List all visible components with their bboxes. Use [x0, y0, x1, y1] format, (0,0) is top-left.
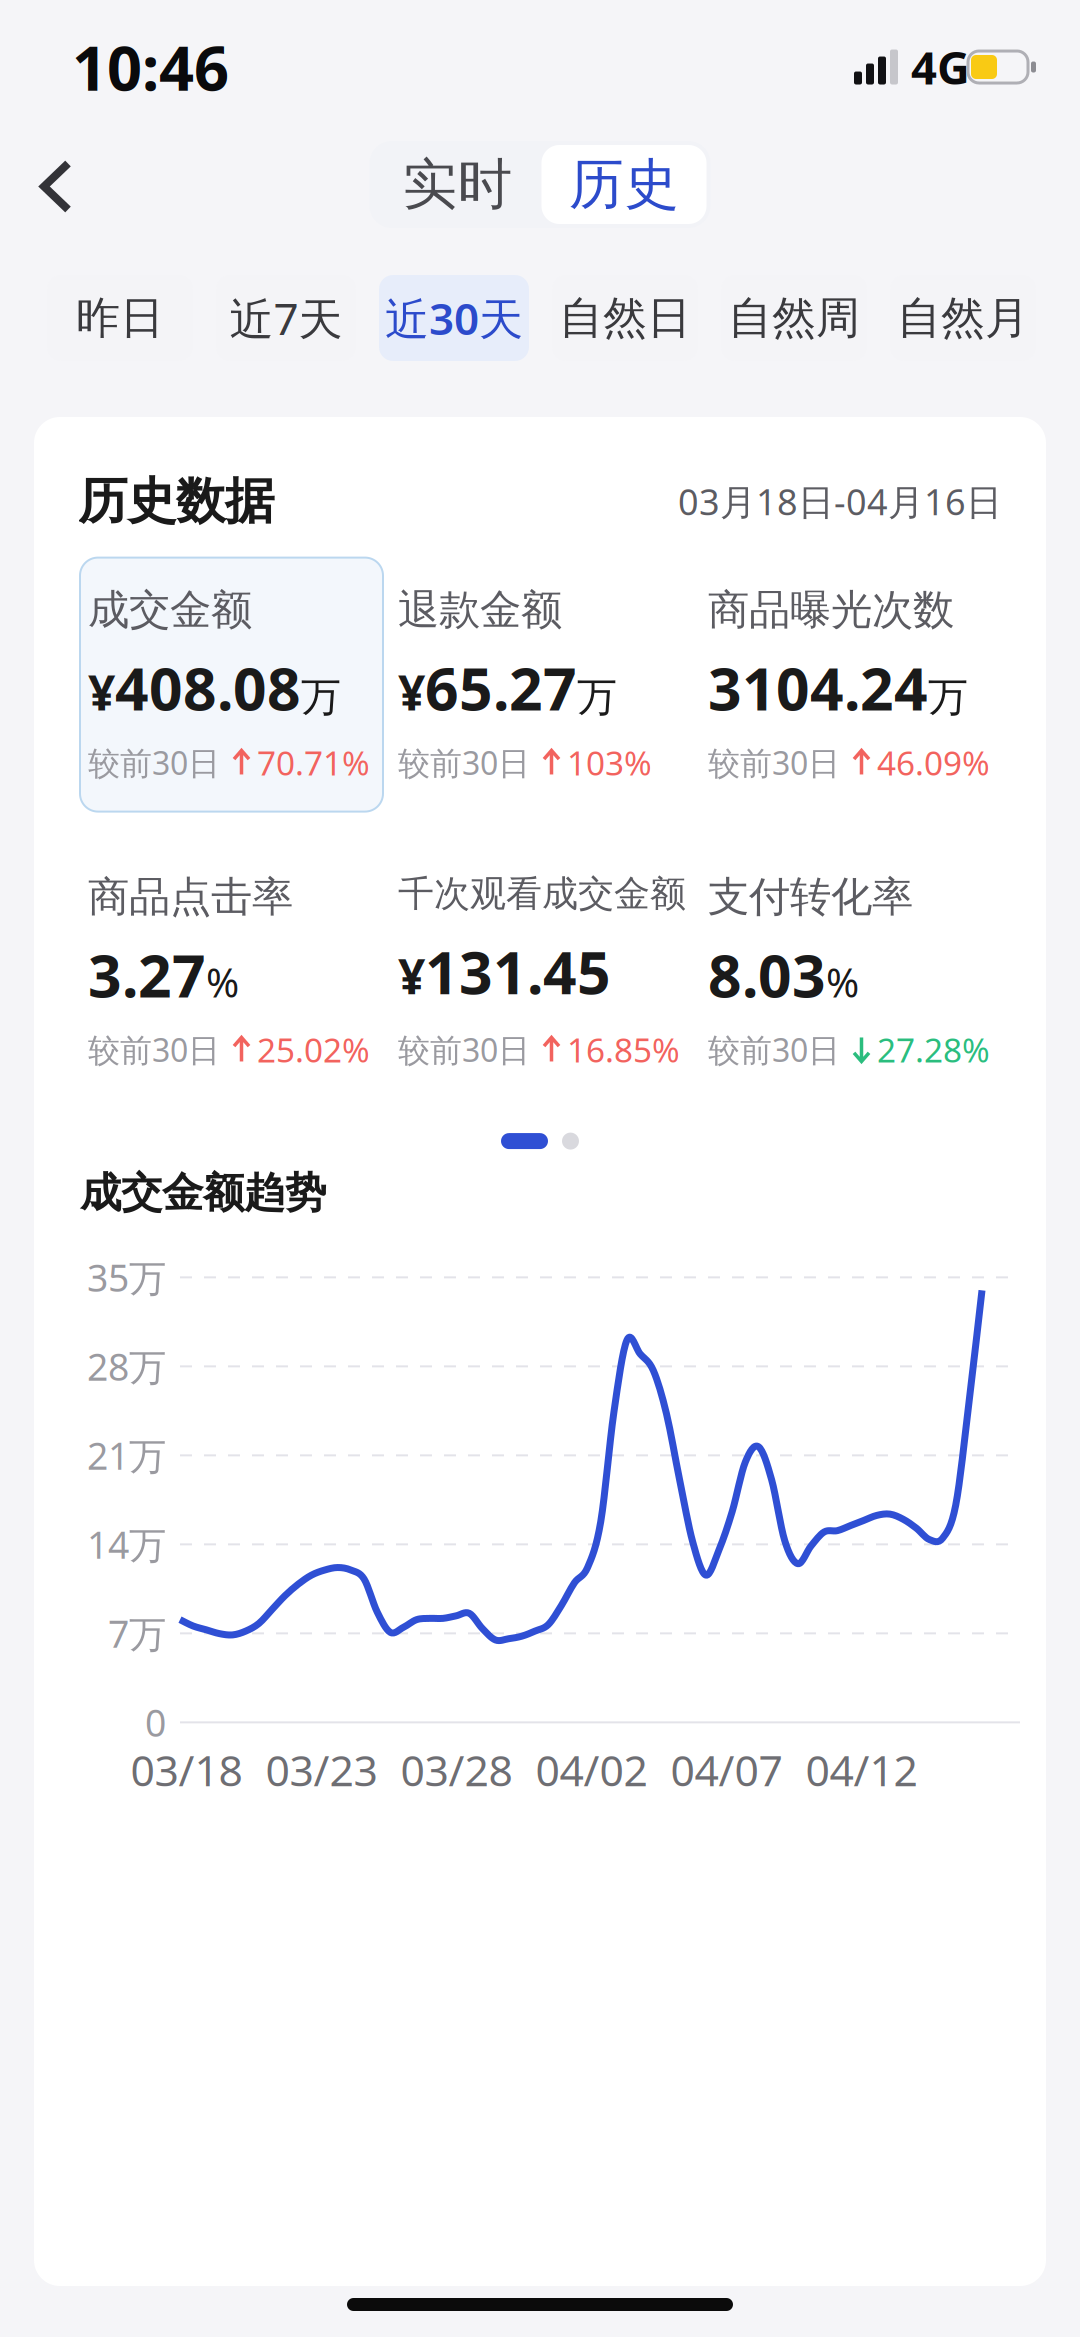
staticText: 成交金额趋势	[80, 1168, 326, 1218]
button[interactable]: 成交金额	[80, 558, 390, 812]
staticText: 较前30日	[708, 1028, 840, 1071]
staticText: 408.08	[115, 649, 301, 727]
staticText: %	[826, 955, 859, 1009]
staticText: 近7天	[229, 289, 342, 347]
staticText: 7万	[108, 1609, 166, 1658]
staticText: 退款金额	[398, 585, 562, 635]
staticText: 04/12	[805, 1741, 917, 1798]
button[interactable]: 自然日	[552, 275, 698, 361]
staticText: 较前30日	[398, 1028, 530, 1071]
staticText: %	[206, 955, 239, 1009]
staticText: 46.09%	[877, 740, 990, 785]
staticText: 实时	[402, 151, 512, 218]
staticText: 35万	[87, 1253, 166, 1302]
staticText: 28万	[87, 1342, 166, 1391]
staticText: 16.85%	[567, 1027, 680, 1072]
staticText: 自然周	[728, 291, 860, 345]
staticText: ¥	[398, 944, 425, 1007]
staticText: 131.45	[425, 933, 611, 1010]
staticText: 近30天	[385, 289, 523, 347]
staticText: 03月18日-04月16日	[678, 477, 1002, 525]
staticText: 历史数据	[78, 471, 274, 532]
button[interactable]: Page 2	[562, 1133, 579, 1150]
staticText: 21万	[87, 1431, 166, 1480]
staticText: ¥	[398, 660, 425, 724]
button[interactable]: Page 1	[501, 1133, 548, 1149]
button[interactable]: 退款金额	[390, 558, 700, 812]
staticText: 10:46	[72, 26, 229, 108]
staticText: 3104.24	[708, 649, 928, 727]
staticText: 04/07	[670, 1741, 782, 1798]
button[interactable]: 自然月	[890, 275, 1036, 361]
staticText: 自然日	[559, 291, 691, 345]
staticText: 0	[145, 1698, 166, 1747]
staticText: 03/23	[265, 1741, 377, 1798]
staticText: 较前30日	[708, 741, 840, 784]
staticText: 70.71%	[257, 740, 370, 785]
staticText: 万	[928, 673, 968, 722]
staticText: 04/02	[535, 1741, 647, 1798]
button[interactable]: 商品曝光次数	[700, 558, 1010, 812]
button[interactable]: 支付转化率	[700, 845, 1010, 1099]
button[interactable]: 近30天	[379, 275, 529, 361]
staticText: 较前30日	[398, 741, 530, 784]
staticText: 3.27	[88, 936, 206, 1014]
staticText: 03/18	[130, 1741, 242, 1798]
staticText: 27.28%	[877, 1027, 990, 1072]
staticText: 65.27	[425, 649, 577, 727]
staticText: 14万	[87, 1520, 166, 1569]
staticText: 较前30日	[88, 1028, 220, 1071]
staticText: 商品曝光次数	[708, 585, 954, 635]
button[interactable]: 商品点击率	[80, 845, 390, 1099]
staticText: 历史	[569, 151, 679, 218]
button[interactable]: 千次观看成交金额	[390, 845, 700, 1099]
staticText: 较前30日	[88, 741, 220, 784]
staticText: 成交金额	[88, 585, 252, 635]
staticText: 25.02%	[257, 1027, 370, 1072]
button[interactable]: Back	[0, 133, 104, 235]
staticText: 万	[577, 673, 617, 722]
button[interactable]: 近7天	[216, 275, 356, 361]
button[interactable]: 自然周	[721, 275, 867, 361]
staticText: 支付转化率	[708, 872, 913, 922]
staticText: 万	[301, 673, 341, 722]
staticText: 4G	[911, 37, 970, 97]
staticText: ¥	[88, 660, 115, 724]
staticText: 8.03	[708, 936, 826, 1014]
button[interactable]: 实时	[373, 145, 541, 224]
button[interactable]: 历史	[541, 145, 706, 224]
staticText: 103%	[567, 740, 652, 785]
staticText: 千次观看成交金额	[398, 872, 686, 916]
staticText: 自然月	[897, 291, 1029, 345]
staticText: 商品点击率	[88, 872, 293, 922]
button[interactable]: 昨日	[47, 275, 193, 361]
staticText: 03/28	[400, 1741, 512, 1798]
staticText: 昨日	[76, 291, 164, 345]
